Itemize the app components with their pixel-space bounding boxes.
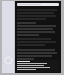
button[interactable]: Search xyxy=(17,3,59,6)
button[interactable] xyxy=(17,49,59,60)
button[interactable]: Profile xyxy=(3,55,14,66)
button[interactable] xyxy=(17,9,59,20)
button[interactable] xyxy=(17,22,59,36)
button[interactable] xyxy=(17,60,59,72)
button[interactable]: Profile xyxy=(2,1,15,73)
button[interactable] xyxy=(17,38,59,46)
